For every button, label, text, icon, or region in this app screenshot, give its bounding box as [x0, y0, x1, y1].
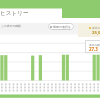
- staticText: 本日の距離: [89, 43, 100, 46]
- button[interactable]: 本日の距離: [85, 40, 100, 53]
- button[interactable]: 期間の選択を: [48, 23, 74, 30]
- button[interactable]: この表示の種類: [1, 24, 21, 28]
- staticText: ヒストリー: [0, 10, 29, 17]
- button[interactable]: 本日の歩数: [78, 23, 100, 37]
- staticText: 25,0: [92, 30, 100, 36]
- staticText: 本日の歩数: [92, 26, 100, 29]
- staticText: 27.3: [89, 46, 98, 52]
- staticText: 期間の選択を: [53, 25, 72, 29]
